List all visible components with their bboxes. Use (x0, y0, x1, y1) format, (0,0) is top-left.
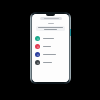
button[interactable] (32, 58, 69, 66)
button[interactable] (40, 17, 62, 20)
button[interactable] (32, 50, 69, 58)
button[interactable] (36, 26, 65, 31)
button[interactable] (32, 34, 69, 42)
button[interactable] (32, 42, 69, 50)
